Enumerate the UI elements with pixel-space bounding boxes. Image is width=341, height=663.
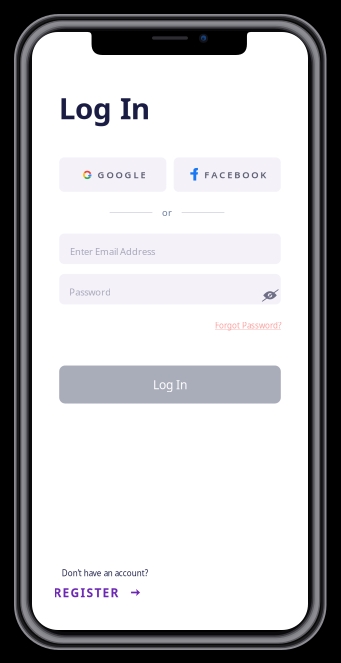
- staticText: or: [162, 206, 172, 219]
- staticText: Enter Email Address: [70, 245, 155, 257]
- button[interactable]: [59, 157, 166, 192]
- staticText: R E G I S T E R: [53, 584, 118, 600]
- button[interactable]: [174, 157, 281, 192]
- button[interactable]: Log In: [59, 365, 281, 403]
- button[interactable]: Forgot Password?: [209, 320, 281, 331]
- staticText: Don’t have an account?: [62, 568, 148, 578]
- staticText: G O O G L E: [97, 168, 145, 181]
- button[interactable]: Show password: [259, 286, 281, 304]
- staticText: Password: [69, 286, 111, 298]
- button[interactable]: [59, 274, 281, 304]
- button[interactable]: R E G I S T E R: [53, 584, 140, 600]
- staticText: Log In: [59, 88, 150, 127]
- staticText: Forgot Password?: [215, 320, 281, 331]
- button[interactable]: [59, 234, 281, 264]
- staticText: Log In: [153, 376, 187, 392]
- staticText: F A C E B O O K: [204, 168, 266, 181]
